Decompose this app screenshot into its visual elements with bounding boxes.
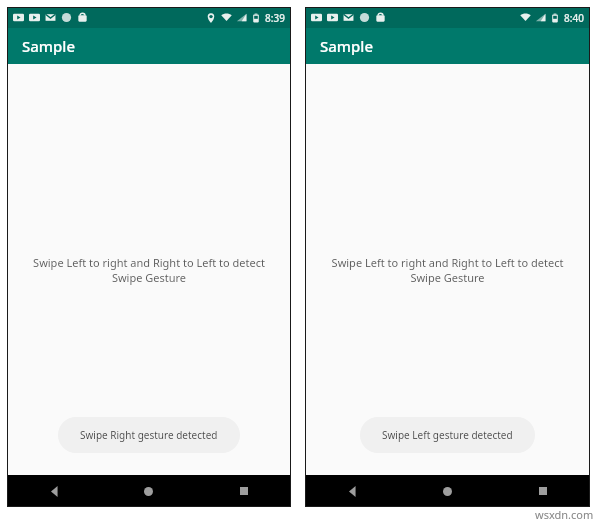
staticText: Swipe Left gesture detected <box>382 428 513 442</box>
staticText: Swipe Left to right and Right to Left to… <box>21 255 277 285</box>
button[interactable]: Recents <box>196 475 291 507</box>
button[interactable]: Back <box>7 475 101 507</box>
staticText: Swipe Right gesture detected <box>80 428 218 442</box>
button[interactable]: Home <box>101 475 196 507</box>
staticText: Sample <box>320 36 373 56</box>
staticText: 8:40 <box>564 11 584 25</box>
staticText: wsxdn.com <box>535 507 594 522</box>
staticText: 8:39 <box>265 11 285 25</box>
staticText: Swipe Left to right and Right to Left to… <box>319 255 576 285</box>
button[interactable]: Home <box>400 475 495 507</box>
button[interactable]: Back <box>305 475 400 507</box>
staticText: Sample <box>22 36 75 56</box>
button[interactable]: Swipe Left gesture detected <box>360 417 535 453</box>
button[interactable]: Sample <box>305 28 590 64</box>
button[interactable]: Sample <box>7 28 291 64</box>
button[interactable]: Recents <box>495 475 590 507</box>
button[interactable]: Swipe Right gesture detected <box>58 417 240 453</box>
